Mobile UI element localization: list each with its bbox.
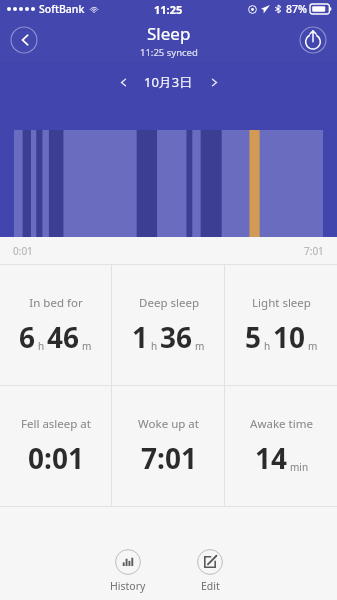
- button[interactable]: Share: [299, 26, 327, 54]
- button[interactable]: Awake time: [225, 386, 337, 506]
- button[interactable]: Deep sleep: [112, 265, 224, 385]
- staticText: 11:25 synced: [140, 46, 198, 59]
- staticText: 10月3日: [144, 73, 193, 91]
- button[interactable]: Previous day: [110, 69, 136, 95]
- staticText: min: [290, 460, 309, 474]
- button[interactable]: Fell asleep at: [0, 386, 111, 506]
- button[interactable]: Edit: [180, 546, 240, 593]
- staticText: h: [151, 339, 158, 353]
- button[interactable]: Light sleep: [225, 265, 337, 385]
- staticText: 5: [245, 318, 262, 356]
- staticText: History: [110, 579, 146, 593]
- staticText: 46: [47, 318, 80, 356]
- staticText: Awake time: [250, 416, 313, 432]
- staticText: 7:01: [304, 244, 324, 258]
- staticText: 0:01: [28, 439, 84, 477]
- staticText: Sleep: [147, 22, 191, 45]
- staticText: 87%: [286, 2, 307, 16]
- button[interactable]: In bed for: [0, 265, 111, 385]
- staticText: 36: [160, 318, 193, 356]
- staticText: Woke up at: [138, 416, 199, 432]
- staticText: h: [38, 339, 45, 353]
- button[interactable]: Next day: [201, 69, 227, 95]
- staticText: 11:25: [154, 2, 183, 17]
- staticText: 10: [273, 318, 306, 356]
- staticText: m: [82, 339, 92, 353]
- staticText: 7:01: [141, 439, 197, 477]
- staticText: 1: [132, 318, 149, 356]
- button[interactable]: Woke up at: [112, 386, 224, 506]
- staticText: m: [308, 339, 318, 353]
- staticText: 0:01: [13, 244, 33, 258]
- staticText: SoftBank: [39, 2, 85, 16]
- button[interactable]: History: [98, 546, 158, 593]
- staticText: Edit: [201, 579, 220, 593]
- staticText: m: [195, 339, 205, 353]
- staticText: Deep sleep: [139, 295, 199, 311]
- staticText: 6: [19, 318, 36, 356]
- staticText: Fell asleep at: [21, 416, 91, 432]
- staticText: h: [264, 339, 271, 353]
- staticText: In bed for: [29, 295, 83, 311]
- button[interactable]: Back: [10, 26, 38, 54]
- staticText: Light sleep: [252, 295, 311, 311]
- staticText: 14: [255, 439, 288, 477]
